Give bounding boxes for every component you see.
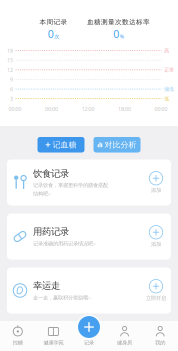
button[interactable]: 我的 bbox=[142, 321, 178, 351]
staticText: 00:00 bbox=[8, 105, 21, 113]
staticText: 健康学苑 bbox=[43, 339, 63, 346]
button[interactable]: 健康学苑 bbox=[36, 321, 71, 351]
staticText: 9 bbox=[10, 76, 13, 83]
staticText: 06:00 bbox=[45, 105, 58, 113]
staticText: 高 bbox=[164, 47, 169, 54]
staticText: 12 bbox=[7, 66, 13, 73]
staticText: 00:00 bbox=[154, 105, 167, 113]
button[interactable]: 幸运走 bbox=[7, 267, 171, 313]
staticText: 立即开启 bbox=[146, 295, 166, 302]
staticText: 我的 bbox=[155, 339, 165, 346]
button[interactable]: 记血糖 bbox=[37, 137, 84, 152]
staticText: 健身房 bbox=[117, 339, 132, 346]
staticText: 12:00 bbox=[81, 105, 94, 113]
button[interactable]: 控糖 bbox=[0, 321, 36, 351]
staticText: 添加 bbox=[151, 241, 161, 248]
button[interactable]: 饮食记录 bbox=[7, 159, 171, 205]
staticText: 本周记录 bbox=[39, 18, 67, 26]
staticText: 结构吧~ bbox=[33, 190, 51, 197]
staticText: 控糖 bbox=[13, 339, 23, 346]
staticText: 次 bbox=[54, 33, 59, 40]
staticText: 走一走，赢取积分奖励哦~ bbox=[33, 294, 91, 301]
staticText: 用药记录 bbox=[33, 226, 69, 237]
staticText: 记录饮食，掌握更科学的膳食搭配 bbox=[33, 182, 108, 188]
staticText: 18 bbox=[7, 47, 13, 54]
staticText: % bbox=[120, 33, 124, 40]
button[interactable]: 用药记录 bbox=[7, 213, 171, 259]
staticText: 记录准确的用药记录情况吧~ bbox=[33, 240, 96, 247]
staticText: 血糖测量次数达标率 bbox=[87, 18, 150, 26]
staticText: 饮食记录 bbox=[33, 168, 69, 179]
staticText: 偏低 bbox=[164, 86, 174, 92]
staticText: 低 bbox=[164, 95, 169, 102]
staticText: 0 bbox=[48, 27, 54, 41]
staticText: 幸运走 bbox=[33, 280, 60, 291]
staticText: 记血糖 bbox=[52, 140, 76, 150]
staticText: 0 bbox=[113, 27, 119, 41]
staticText: 15 bbox=[7, 57, 13, 64]
button[interactable]: 对比分析 bbox=[93, 137, 140, 152]
staticText: 添加 bbox=[151, 187, 161, 194]
staticText: 6 bbox=[10, 85, 13, 93]
staticText: 正常 bbox=[164, 67, 174, 73]
staticText: 记录 bbox=[84, 339, 94, 346]
button[interactable]: 健身房 bbox=[107, 321, 142, 351]
staticText: 18:00 bbox=[118, 105, 131, 113]
staticText: 对比分析 bbox=[104, 140, 136, 150]
staticText: 3 bbox=[10, 95, 13, 102]
button[interactable]: 记录 bbox=[76, 314, 102, 340]
